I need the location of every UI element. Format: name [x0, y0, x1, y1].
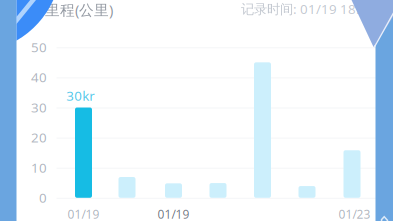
staticText: 30	[31, 98, 47, 116]
staticText: 0	[39, 189, 47, 206]
staticText: 里程(公里)	[45, 0, 113, 19]
staticText: 40	[31, 68, 47, 86]
staticText: 50	[31, 38, 47, 56]
staticText: 20	[31, 128, 47, 146]
staticText: 记录时间: 01/19 18:24	[241, 0, 376, 18]
staticText: 10	[31, 159, 47, 176]
staticText: 01/23	[338, 206, 370, 221]
staticText: 01/19	[157, 206, 189, 221]
button[interactable]: Home	[0, 0, 393, 221]
staticText: 01/19	[67, 206, 99, 221]
staticText: 30kr	[66, 87, 95, 104]
